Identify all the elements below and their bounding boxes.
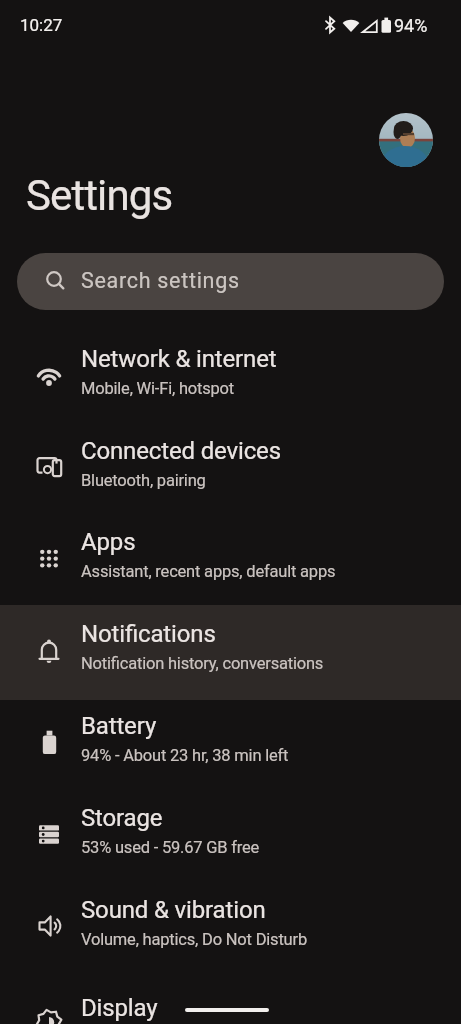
button[interactable]: Sound & vibration bbox=[0, 879, 461, 977]
staticText: 53% used - 59.67 GB free bbox=[81, 838, 260, 857]
staticText: Assistant, recent apps, default apps bbox=[81, 562, 336, 581]
staticText: Battery bbox=[81, 712, 157, 740]
button[interactable] bbox=[379, 113, 433, 167]
button[interactable]: Network & internet bbox=[0, 328, 461, 420]
button[interactable]: Battery bbox=[0, 695, 461, 787]
staticText: Volume, haptics, Do Not Disturb bbox=[81, 930, 307, 949]
button[interactable]: Apps bbox=[0, 511, 461, 603]
button[interactable]: Search settings bbox=[17, 253, 444, 310]
staticText: Apps bbox=[81, 528, 136, 556]
staticText: Notifications bbox=[81, 620, 216, 648]
staticText: Display bbox=[81, 994, 158, 1022]
staticText: Search settings bbox=[81, 268, 240, 293]
button[interactable]: Storage bbox=[0, 787, 461, 879]
staticText: 94% bbox=[394, 15, 428, 36]
button[interactable]: Notifications bbox=[0, 603, 461, 695]
staticText: Settings bbox=[26, 171, 173, 220]
staticText: Notification history, conversations bbox=[81, 654, 324, 673]
staticText: 10:27 bbox=[20, 15, 63, 35]
staticText: Sound & vibration bbox=[81, 896, 266, 924]
staticText: Storage bbox=[81, 804, 163, 832]
staticText: 94% - About 23 hr, 38 min left bbox=[81, 746, 289, 765]
staticText: Connected devices bbox=[81, 437, 281, 465]
staticText: Bluetooth, pairing bbox=[81, 471, 206, 490]
button[interactable]: Connected devices bbox=[0, 420, 461, 512]
staticText: Network & internet bbox=[81, 345, 277, 373]
button[interactable]: Display bbox=[0, 977, 461, 1024]
staticText: Mobile, Wi-Fi, hotspot bbox=[81, 379, 234, 398]
